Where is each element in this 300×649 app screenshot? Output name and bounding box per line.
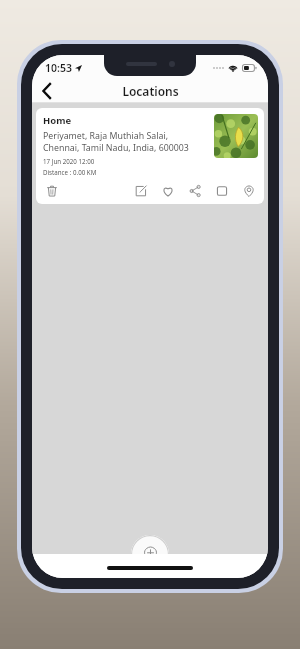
button[interactable]: Favourite [159,182,176,199]
staticText: 10:53 [45,61,72,75]
button[interactable]: Copy [213,182,230,199]
button[interactable]: Back [32,78,62,103]
button[interactable]: Location photo [214,114,258,158]
staticText: Distance : 0.00 KM [43,168,97,176]
button[interactable]: Home [36,108,264,204]
staticText: Chennai, Tamil Nadu, India, 600003 [43,142,189,154]
staticText: Periyamet, Raja Muthiah Salai, [43,130,169,142]
button[interactable]: Edit [132,182,149,199]
button[interactable]: Add location [131,535,169,573]
button[interactable]: Share [186,182,203,199]
button[interactable]: Delete [43,182,60,199]
staticText: Locations [122,83,179,99]
button[interactable]: Show on map [240,182,257,199]
staticText: Home [43,114,72,127]
staticText: 17 Jun 2020 12:00 [43,157,95,165]
